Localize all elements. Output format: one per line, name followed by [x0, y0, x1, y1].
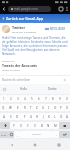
button[interactable]: Q	[0, 104, 7, 111]
button[interactable]: B	[38, 122, 45, 129]
button[interactable]: mail.google.com	[8, 6, 51, 12]
button[interactable]: More options	[64, 4, 70, 14]
button[interactable]: Senden	[61, 76, 68, 83]
button[interactable]: Shift	[0, 122, 10, 129]
button[interactable]: M	[52, 122, 59, 129]
button[interactable]: ?123	[0, 131, 8, 138]
button[interactable]: 6	[35, 95, 42, 102]
staticText: 6	[38, 97, 40, 101]
staticText: 4	[24, 97, 26, 101]
button[interactable]: K	[46, 113, 52, 120]
button[interactable]: 9	[56, 95, 63, 102]
button[interactable]: Ä	[64, 113, 70, 120]
staticText: 2	[10, 97, 12, 101]
button[interactable]: Z	[34, 104, 40, 111]
button[interactable]: 0	[63, 95, 70, 102]
staticText: Hallo	[20, 87, 28, 91]
button[interactable]: Übersicht	[54, 140, 63, 149]
staticText: 7	[45, 97, 47, 101]
button[interactable]: Tabs	[57, 4, 64, 14]
staticText: X	[20, 124, 22, 128]
button[interactable]: Eingabe	[59, 131, 70, 138]
button[interactable]: 7	[42, 95, 49, 102]
button[interactable]: N	[45, 122, 52, 129]
button[interactable]: Ü	[64, 104, 70, 111]
button[interactable]: E	[14, 104, 21, 111]
button[interactable]: Hallo	[9, 84, 38, 94]
button[interactable]: T	[28, 104, 34, 111]
button[interactable]: P	[58, 104, 64, 111]
button[interactable]: 5	[28, 95, 35, 102]
button[interactable]: Ö	[58, 113, 64, 120]
button[interactable]: Zurück	[7, 140, 16, 149]
button[interactable]: Y	[10, 122, 17, 129]
button[interactable]: F	[21, 113, 28, 120]
staticText: 8	[52, 97, 54, 101]
button[interactable]: I	[46, 104, 52, 111]
staticText: denen du folgst	[2, 68, 20, 71]
staticText: W	[9, 106, 12, 110]
staticText: B	[41, 124, 43, 128]
staticText: R	[24, 106, 26, 110]
button[interactable]: L	[52, 113, 58, 120]
button[interactable]: 3	[14, 95, 21, 102]
button[interactable]: MITGLIEDER	[45, 27, 66, 31]
staticText: Y	[13, 124, 15, 128]
button[interactable]: Zurück zur Gmail-App	[0, 14, 70, 23]
button[interactable]: ,	[14, 131, 20, 138]
button[interactable]: O	[52, 104, 58, 111]
staticText: V	[34, 124, 36, 128]
staticText: ,	[17, 133, 18, 137]
staticText: Z	[36, 106, 38, 110]
button[interactable]: U	[40, 104, 46, 111]
button[interactable]: H	[34, 113, 40, 120]
button[interactable]: Nachricht schreiben	[2, 75, 61, 84]
button[interactable]: 1	[0, 95, 7, 102]
button[interactable]: 8	[49, 95, 56, 102]
staticText: 09:32 (vor 2 Stunden)	[12, 30, 36, 33]
button[interactable]: G	[28, 113, 34, 120]
button[interactable]: 2	[7, 95, 14, 102]
staticText: J	[43, 115, 44, 119]
button[interactable]: C	[24, 122, 31, 129]
staticText: mail.google.com	[14, 7, 38, 11]
button[interactable]: J	[40, 113, 46, 120]
staticText: Zurück zur Gmail-App	[6, 16, 44, 21]
staticText: ?123	[1, 133, 7, 136]
button[interactable]: Leertaste	[20, 131, 53, 138]
button[interactable]: A	[0, 113, 7, 120]
staticText: MITGLIEDER	[50, 27, 66, 31]
staticText: K	[48, 115, 50, 119]
staticText: 3	[17, 97, 19, 101]
staticText: Hallo! Hier sind einige Tweets und Theme…	[2, 36, 68, 56]
button[interactable]: Emoji	[8, 131, 14, 138]
staticText: Ä	[66, 115, 68, 119]
button[interactable]: Back	[0, 4, 8, 14]
staticText: P	[60, 106, 62, 110]
staticText: Deutsch	[32, 133, 41, 136]
staticText: Ö	[60, 115, 63, 119]
button[interactable]: Backspace	[59, 122, 70, 129]
button[interactable]: R	[21, 104, 28, 111]
staticText: 5	[31, 97, 33, 101]
button[interactable]: Danke	[38, 84, 67, 94]
button[interactable]: S	[7, 113, 14, 120]
staticText: A	[3, 115, 5, 119]
button[interactable]: V	[31, 122, 38, 129]
button[interactable]: Startbildschirm	[30, 140, 39, 149]
staticText: 9	[59, 97, 61, 101]
staticText: I	[48, 106, 50, 110]
button[interactable]: .	[53, 131, 59, 138]
staticText: 0	[66, 97, 68, 101]
button[interactable]: 4	[21, 95, 28, 102]
button[interactable]: Gboard	[0, 84, 9, 94]
staticText: Twitter Inc.	[2, 59, 15, 62]
button[interactable]: X	[17, 122, 24, 129]
staticText: H	[36, 115, 39, 119]
staticText: U	[42, 106, 45, 110]
staticText: F	[24, 115, 26, 119]
button[interactable]: D	[14, 113, 21, 120]
button[interactable]: W	[7, 104, 14, 111]
staticText: N	[47, 124, 50, 128]
staticText: G	[30, 115, 33, 119]
